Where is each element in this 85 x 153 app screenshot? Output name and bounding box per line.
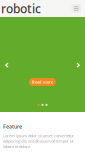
- button[interactable]: Read more: [29, 78, 56, 86]
- staticText: Feature: [3, 123, 22, 130]
- staticText: Lorem ipsum dolor sit amet, consectetur …: [3, 133, 74, 149]
- staticText: robotic: [1, 0, 41, 16]
- button[interactable]: Previous slide: [2, 60, 11, 70]
- button[interactable]: Menu: [71, 4, 81, 13]
- staticText: Read more: [32, 79, 53, 85]
- button[interactable]: Next slide: [74, 60, 82, 70]
- button[interactable]: robotic: [1, 0, 41, 16]
